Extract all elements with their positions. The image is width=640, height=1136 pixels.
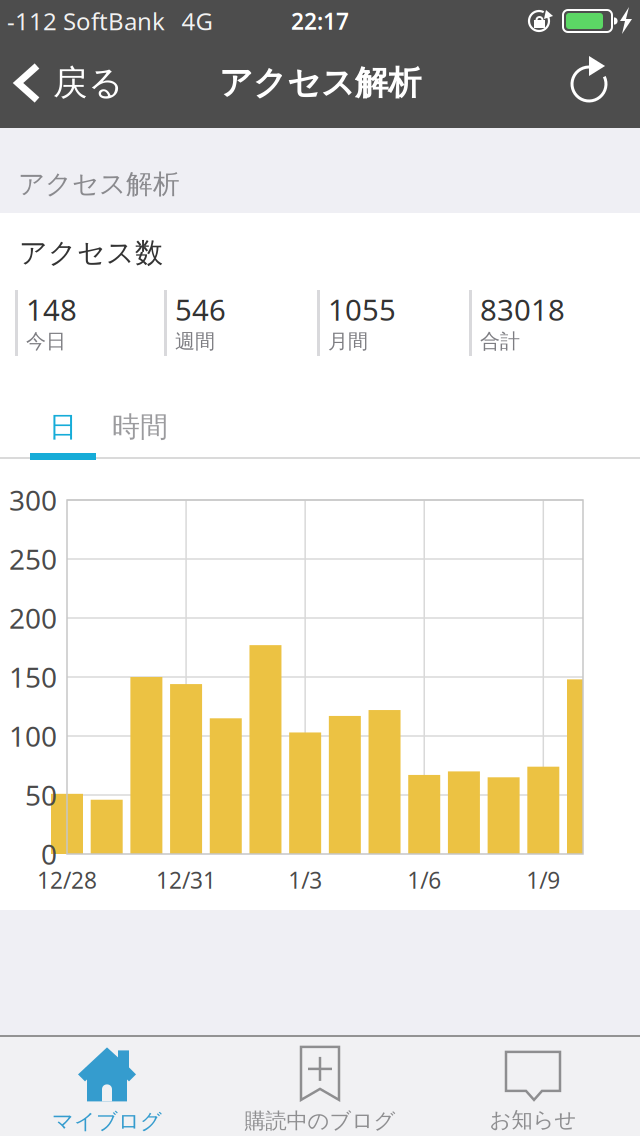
staticText: -112 SoftBank [7, 5, 165, 37]
staticText: 83018 [480, 290, 565, 329]
staticText: 150 [9, 658, 57, 696]
staticText: アクセス数 [19, 236, 163, 270]
button[interactable]: 購読中のブログ [215, 1042, 425, 1136]
staticText: 1/6 [407, 865, 441, 895]
button[interactable]: 日 [30, 405, 96, 449]
staticText: 戻る [53, 62, 123, 104]
staticText: マイブログ [52, 1108, 162, 1135]
button[interactable]: マイブログ [7, 1042, 207, 1136]
staticText: お知らせ [489, 1107, 576, 1133]
staticText: 22:17 [291, 6, 349, 36]
staticText: 1055 [328, 290, 396, 329]
staticText: 1/3 [288, 865, 322, 895]
staticText: 今日 [26, 329, 66, 354]
staticText: 250 [9, 540, 57, 578]
staticText: 購読中のブログ [244, 1108, 395, 1134]
staticText: 50 [25, 776, 57, 814]
staticText: 合計 [480, 329, 520, 354]
staticText: 200 [9, 599, 57, 637]
staticText: 日 [49, 410, 77, 444]
button[interactable]: 戻る [13, 50, 149, 116]
staticText: 4G [181, 5, 212, 37]
staticText: アクセス解析 [18, 168, 180, 200]
staticText: 148 [26, 290, 77, 329]
staticText: 時間 [112, 410, 168, 444]
staticText: 1/9 [526, 865, 560, 895]
staticText: 12/28 [37, 865, 97, 895]
button[interactable]: お知らせ [433, 1042, 633, 1136]
button[interactable]: 時間 [100, 405, 180, 449]
staticText: 0 [41, 835, 57, 873]
staticText: 12/31 [156, 865, 216, 895]
staticText: 546 [175, 290, 226, 329]
staticText: アクセス解析 [219, 62, 421, 103]
staticText: 週間 [175, 329, 215, 354]
staticText: 月間 [328, 329, 368, 354]
staticText: 300 [9, 481, 57, 519]
staticText: 100 [9, 717, 57, 755]
button[interactable] [563, 56, 615, 112]
